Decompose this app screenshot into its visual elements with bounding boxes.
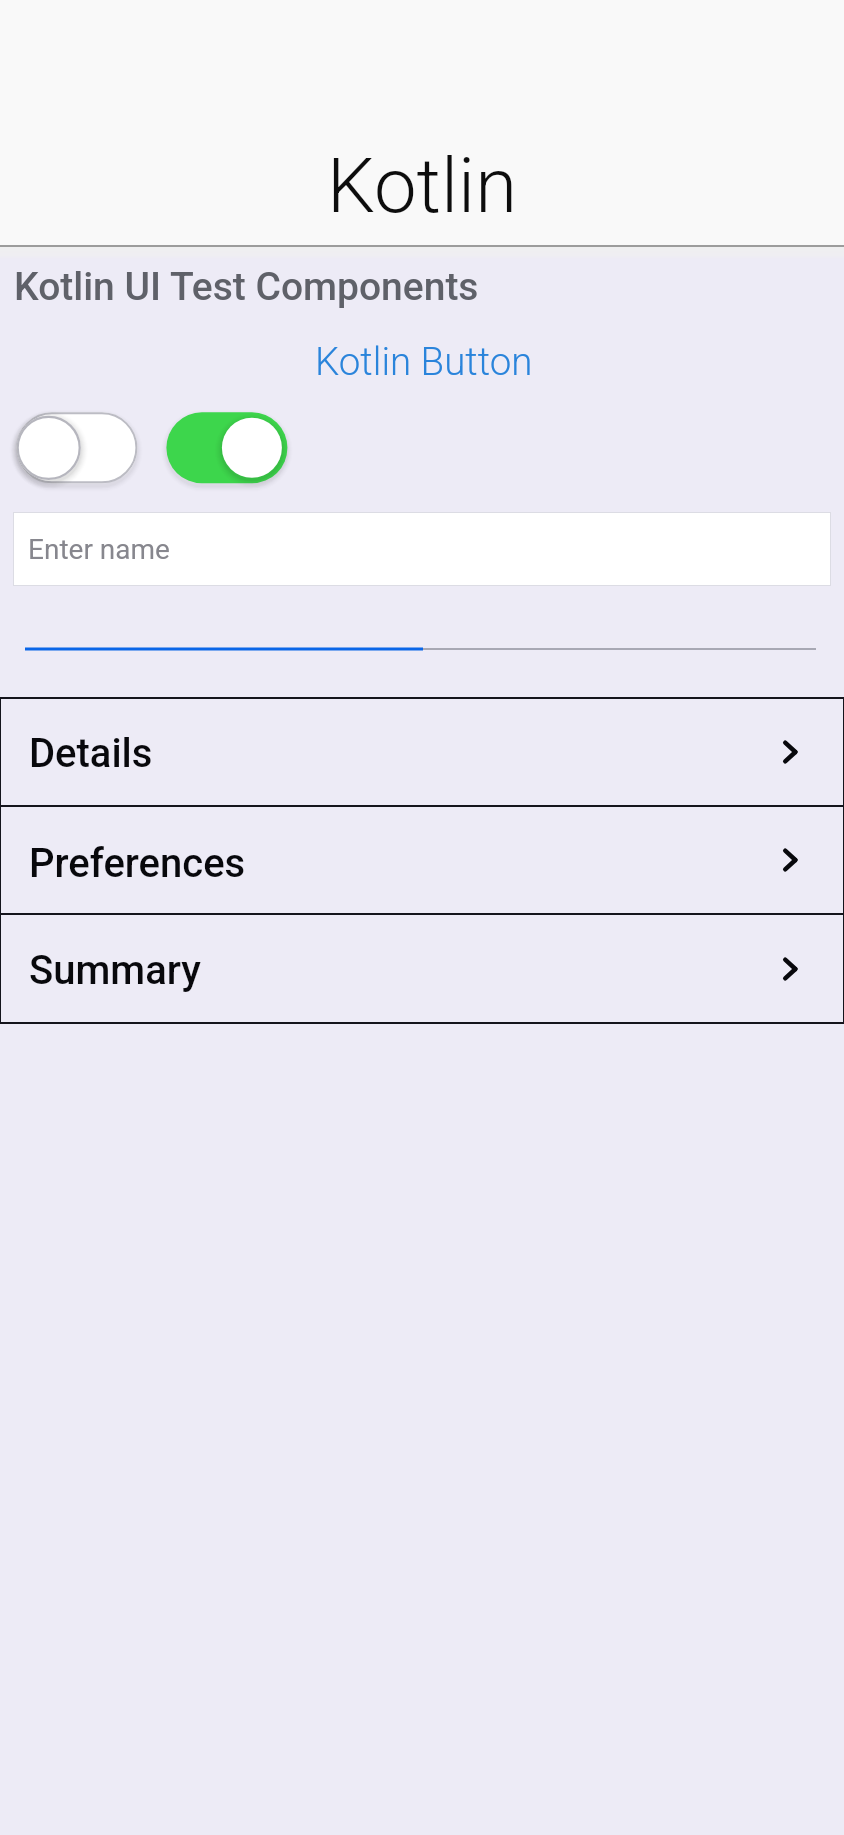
button[interactable]: Details bbox=[0, 699, 844, 805]
staticText: Kotlin UI Test Components bbox=[14, 264, 479, 310]
staticText: Enter name bbox=[28, 533, 170, 566]
other: Open Preferences bbox=[783, 845, 813, 875]
staticText: Kotlin Button bbox=[315, 339, 533, 384]
button[interactable]: Kotlin Button bbox=[0, 334, 844, 389]
staticText: Summary bbox=[29, 947, 201, 994]
other: Open Details bbox=[783, 737, 813, 767]
button[interactable]: Enter name bbox=[13, 512, 831, 586]
staticText: Preferences bbox=[29, 840, 246, 887]
staticText: Details bbox=[29, 730, 153, 777]
button[interactable]: Toggle on bbox=[166, 412, 290, 488]
button[interactable]: Toggle off bbox=[16, 412, 140, 488]
other: Open Summary bbox=[783, 954, 813, 984]
button[interactable]: Summary bbox=[0, 915, 844, 1022]
staticText: Kotlin bbox=[327, 141, 517, 230]
button[interactable]: Preferences bbox=[0, 807, 844, 913]
